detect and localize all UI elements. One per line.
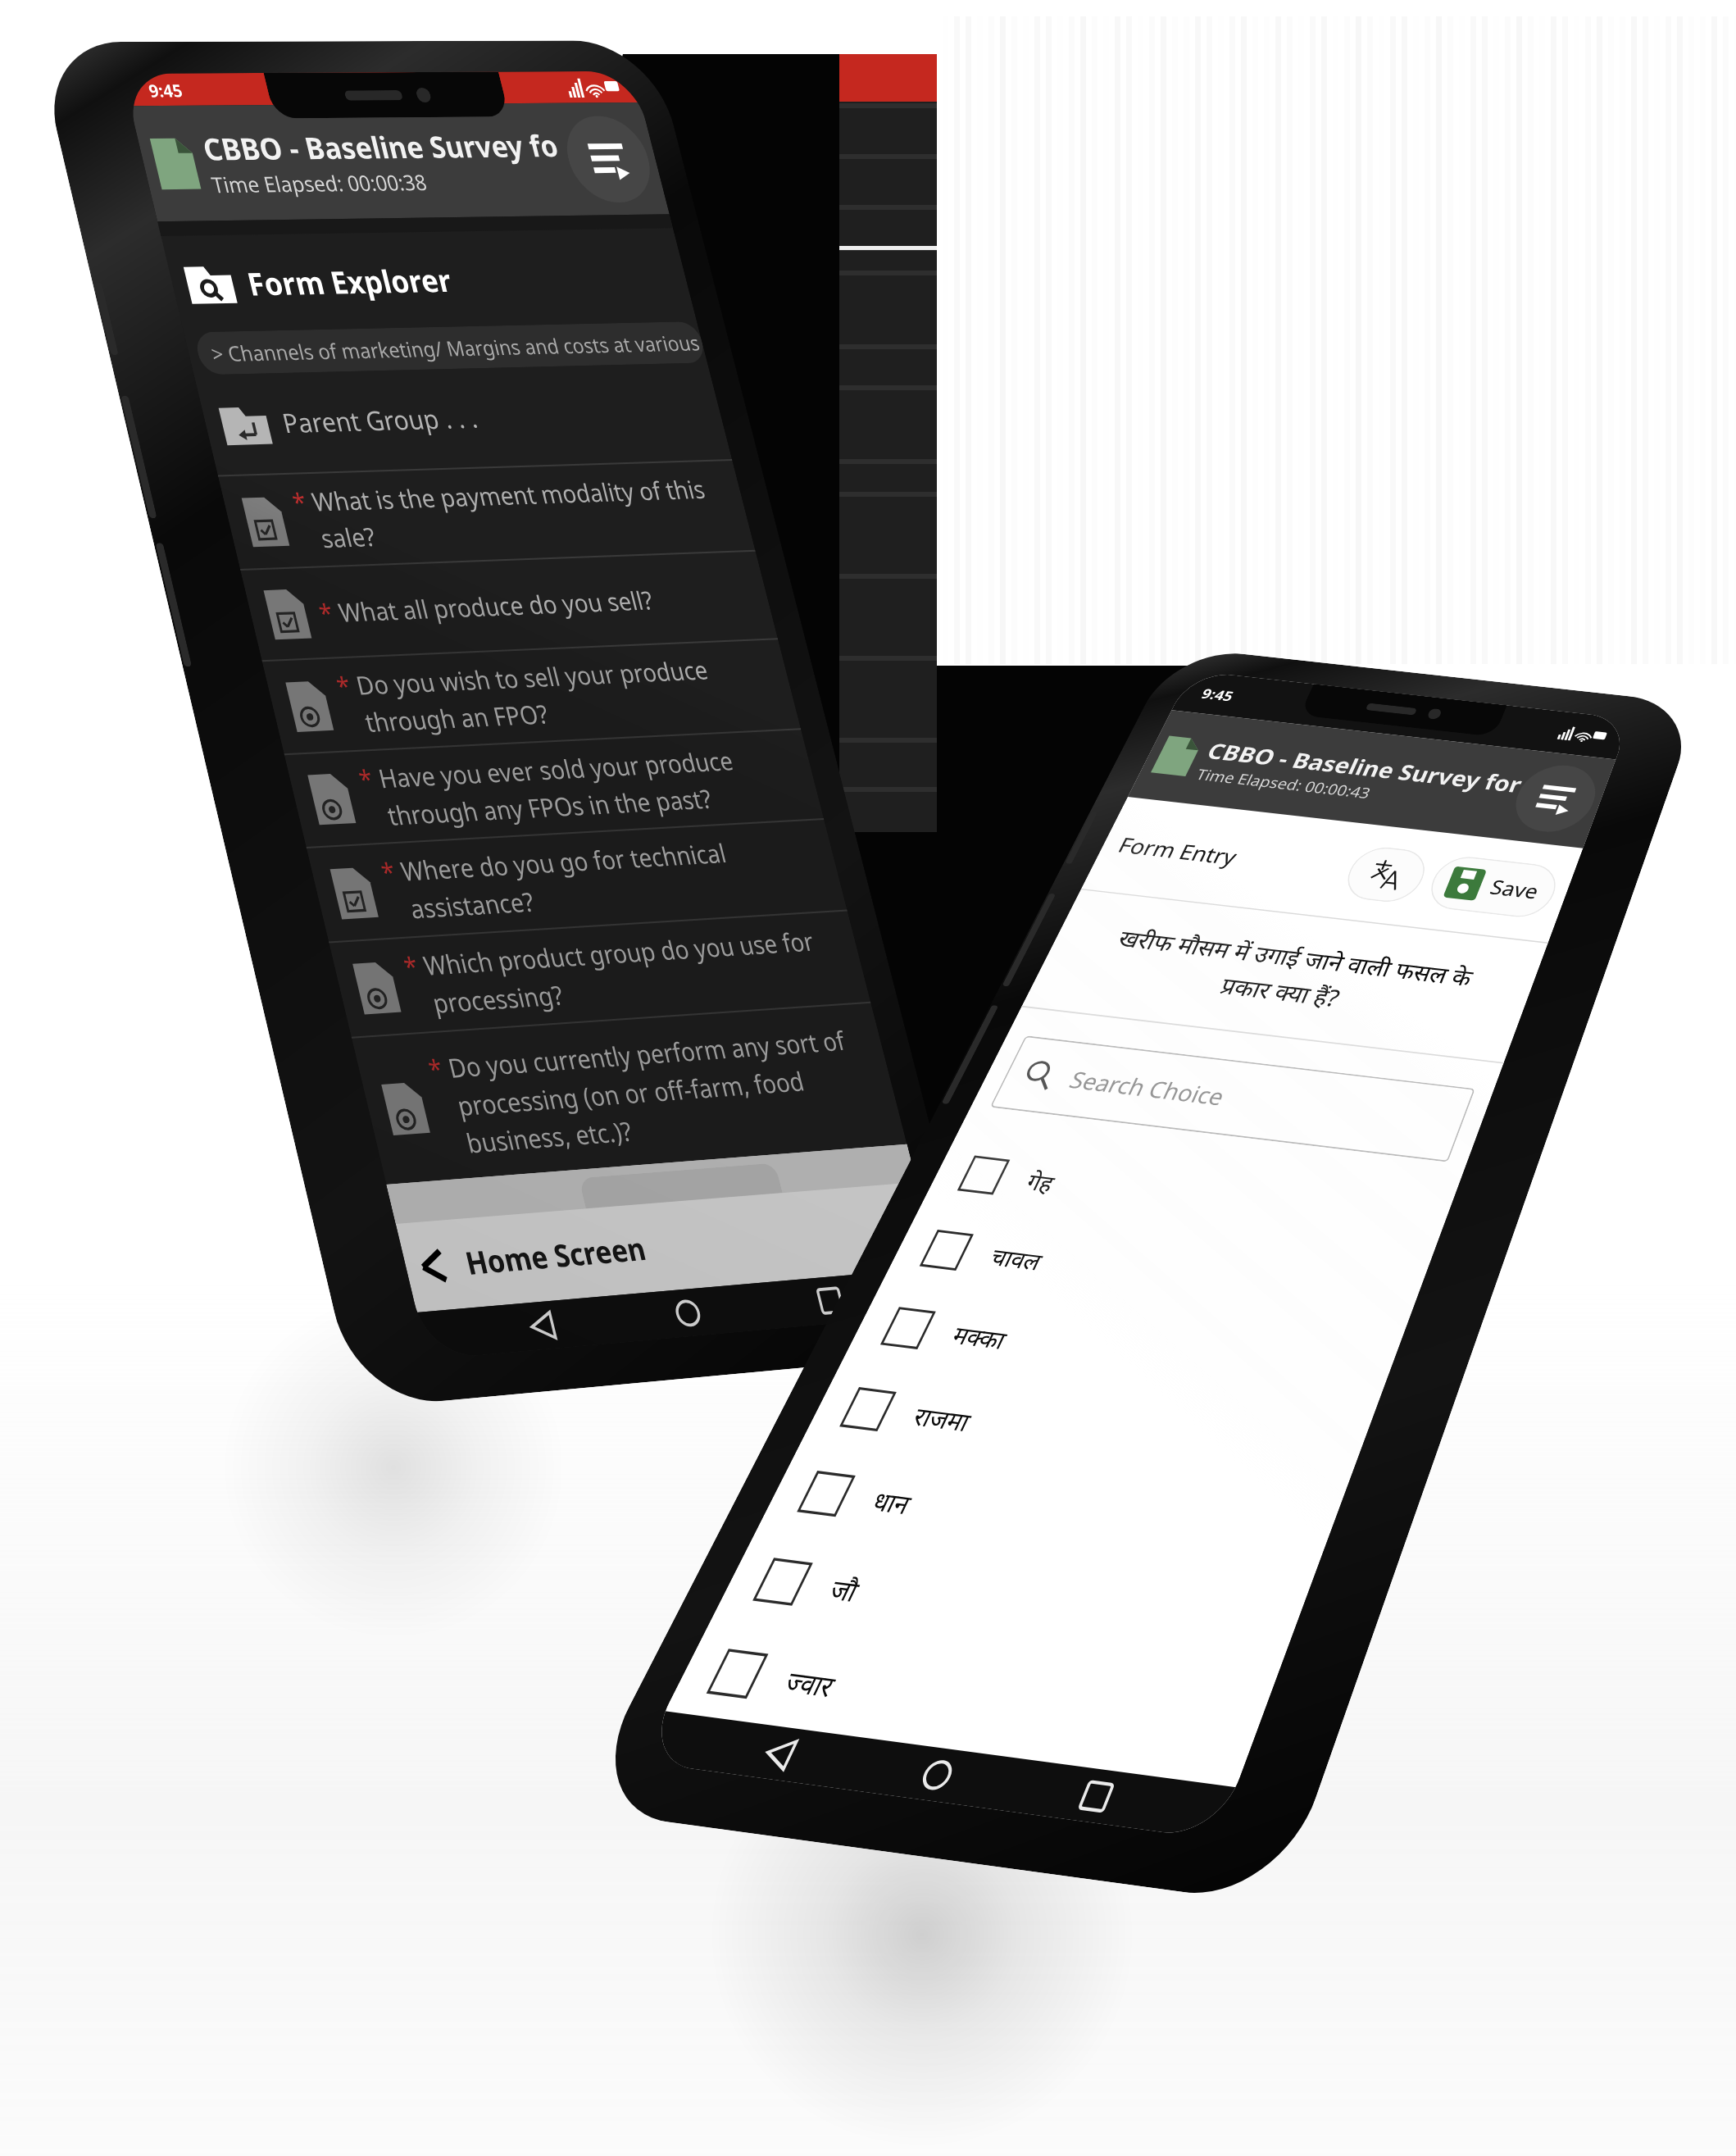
button[interactable]: Home bbox=[897, 1745, 977, 1804]
button[interactable]: * bbox=[325, 821, 834, 940]
staticText: * bbox=[400, 948, 428, 984]
staticText: CBBO - Baseline Survey fo bbox=[198, 125, 562, 169]
button[interactable]: धान bbox=[786, 1448, 1337, 1602]
button[interactable]: राजमा bbox=[829, 1365, 1369, 1513]
button[interactable]: > Channels of marketing/ Margins and cos… bbox=[193, 321, 707, 375]
button[interactable]: Save bbox=[1422, 854, 1564, 920]
staticText: Time Elapsed: 00:00:43 bbox=[1193, 764, 1374, 803]
staticText: Search Choice bbox=[1064, 1064, 1230, 1112]
button[interactable]: Menu bbox=[558, 116, 659, 203]
staticText: * bbox=[377, 854, 406, 890]
button[interactable]: Back bbox=[511, 1300, 576, 1351]
button[interactable]: Back bbox=[740, 1724, 821, 1783]
button[interactable]: * bbox=[370, 1004, 894, 1183]
staticText: गेह bbox=[1022, 1166, 1060, 1198]
staticText: मक्का bbox=[947, 1318, 1013, 1356]
button[interactable]: Recents bbox=[799, 1275, 862, 1326]
button[interactable]: Translate bbox=[1339, 844, 1433, 905]
button[interactable]: मक्का bbox=[870, 1286, 1399, 1428]
button[interactable]: Form Explorer bbox=[176, 228, 697, 332]
staticText: बाजरा bbox=[744, 1732, 820, 1779]
staticText: Have you ever sold your produce through … bbox=[375, 740, 809, 833]
staticText: ज्वार bbox=[779, 1662, 842, 1705]
staticText: Which product group do you use for proce… bbox=[420, 922, 855, 1021]
button[interactable]: Search Choice bbox=[990, 1036, 1475, 1162]
button[interactable]: Close bbox=[406, 1182, 938, 1311]
staticText: Form Explorer bbox=[243, 259, 456, 304]
staticText: खरीफ मौसम में उगाई जाने वाली फसल के प्रक… bbox=[1075, 920, 1499, 1030]
button[interactable]: * bbox=[347, 912, 858, 1036]
staticText: 9:45 bbox=[1198, 684, 1237, 705]
button[interactable]: * bbox=[259, 552, 765, 659]
staticText: * bbox=[355, 761, 383, 797]
button[interactable]: बाजरा bbox=[670, 1718, 1235, 1839]
button[interactable]: * bbox=[280, 640, 788, 753]
staticText: * bbox=[289, 484, 317, 519]
button[interactable]: Menu bbox=[1505, 762, 1605, 836]
staticText: Where do you go for technical assistance… bbox=[397, 830, 832, 926]
staticText: What all produce do you sell? bbox=[335, 583, 657, 629]
button[interactable]: जौ bbox=[741, 1534, 1305, 1694]
staticText: CBBO - Baseline Survey for bbox=[1202, 736, 1527, 799]
button[interactable]: गेह bbox=[948, 1136, 1456, 1268]
staticText: * bbox=[333, 668, 361, 703]
button[interactable]: Recents bbox=[1057, 1766, 1136, 1826]
staticText: Save bbox=[1486, 873, 1543, 905]
button[interactable]: Home bbox=[656, 1287, 720, 1338]
staticText: 9:45 bbox=[146, 78, 185, 102]
button[interactable]: ज्वार bbox=[694, 1624, 1271, 1790]
staticText: Home Screen bbox=[461, 1228, 650, 1284]
staticText: Parent Group . . . bbox=[279, 400, 481, 441]
staticText: Do you wish to sell your produce through… bbox=[352, 650, 785, 739]
staticText: राजमा bbox=[908, 1399, 977, 1439]
button[interactable]: चावल bbox=[909, 1210, 1428, 1347]
staticText: Do you currently perform any sort of pro… bbox=[444, 1021, 890, 1161]
staticText: * bbox=[315, 595, 343, 630]
staticText: Form Entry bbox=[1113, 831, 1242, 871]
staticText: धान bbox=[867, 1483, 918, 1522]
staticText: Time Elapsed: 00:00:38 bbox=[209, 167, 430, 199]
other: Close bbox=[413, 1248, 452, 1285]
staticText: जौ bbox=[824, 1570, 866, 1610]
button[interactable]: * bbox=[303, 730, 811, 846]
staticText: * bbox=[425, 1050, 453, 1087]
staticText: चावल bbox=[985, 1240, 1048, 1277]
staticText: What is the payment modality of this sal… bbox=[308, 471, 740, 555]
staticText: > Channels of marketing/ Margins and cos… bbox=[208, 328, 703, 367]
button[interactable]: * bbox=[236, 461, 742, 568]
button[interactable]: Parent Group . . . bbox=[211, 363, 732, 475]
